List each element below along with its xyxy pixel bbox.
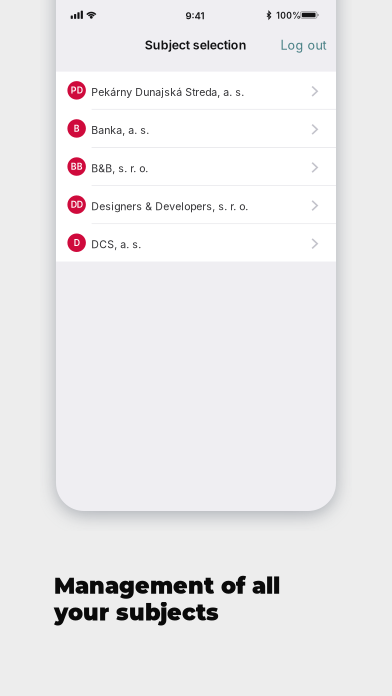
staticText: PD: [71, 85, 83, 96]
staticText: DD: [71, 199, 83, 210]
staticText: Subject selection: [145, 37, 247, 52]
staticText: 9:41: [185, 10, 204, 21]
staticText: DCS, a. s.: [91, 238, 141, 251]
button[interactable]: Log out: [274, 32, 332, 58]
button[interactable]: BB: [56, 148, 336, 185]
staticText: Log out: [280, 38, 326, 53]
staticText: 100%: [276, 11, 301, 21]
button[interactable]: D: [56, 224, 336, 261]
staticText: BB: [71, 161, 83, 172]
staticText: B: [74, 123, 80, 134]
staticText: Management of all: [54, 572, 280, 599]
button[interactable]: PD: [56, 72, 336, 109]
button[interactable]: DD: [56, 186, 336, 223]
staticText: B&B, s. r. o.: [91, 162, 148, 175]
staticText: your subjects: [54, 599, 219, 626]
staticText: Designers & Developers, s. r. o.: [91, 200, 248, 213]
staticText: Banka, a. s.: [91, 124, 149, 136]
button[interactable]: B: [56, 110, 336, 147]
staticText: Pekárny Dunajská Streda, a. s.: [91, 86, 244, 98]
staticText: D: [74, 237, 80, 248]
